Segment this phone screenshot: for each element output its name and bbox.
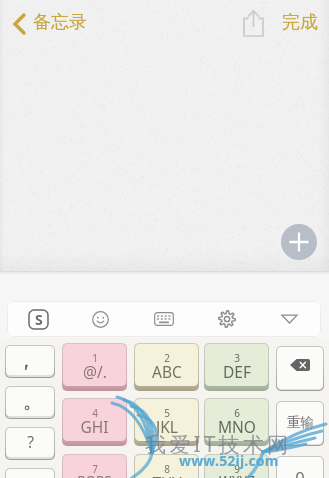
button[interactable]: 3 — [204, 343, 269, 391]
button[interactable]: 5 — [134, 398, 199, 446]
staticText: PQRS — [77, 472, 112, 478]
button[interactable]: Share — [236, 5, 270, 43]
button[interactable]: Delete — [276, 346, 324, 391]
staticText: 重输 — [287, 414, 314, 431]
staticText: @/. — [83, 361, 107, 382]
staticText: 完成 — [282, 11, 318, 34]
button[interactable]: 0 — [276, 456, 324, 478]
staticText: 6 — [234, 406, 240, 420]
button[interactable]: 完成 — [277, 6, 327, 43]
button[interactable]: Comma — [5, 345, 55, 378]
button[interactable]: Input method — [7, 301, 69, 337]
button[interactable]: Period — [5, 386, 55, 419]
staticText: 9 — [234, 462, 240, 476]
staticText: JKL — [156, 416, 178, 437]
staticText: S — [35, 310, 43, 329]
button[interactable]: 2 — [134, 343, 199, 391]
staticText: 备忘录 — [33, 11, 87, 34]
staticText: GHI — [80, 416, 109, 437]
staticText: TUV — [152, 472, 182, 478]
staticText: 4 — [92, 406, 98, 420]
button[interactable]: Add note — [281, 224, 317, 260]
button[interactable]: 9 — [204, 454, 269, 478]
button[interactable]: 6 — [204, 398, 269, 446]
button[interactable]: Settings — [195, 301, 258, 337]
button[interactable]: Symbols — [5, 468, 55, 478]
staticText: ? — [27, 431, 34, 452]
button[interactable]: 8 — [134, 454, 199, 478]
staticText: 8 — [164, 462, 170, 476]
staticText: www.52ij.com — [179, 451, 279, 470]
button[interactable]: 备忘录 — [6, 6, 98, 43]
staticText: 3 — [234, 351, 240, 365]
staticText: 2 — [164, 351, 170, 365]
button[interactable]: 1 — [62, 343, 127, 391]
staticText: ABC — [152, 361, 182, 382]
staticText: 7 — [92, 462, 98, 476]
button[interactable]: Question mark — [5, 427, 55, 460]
button[interactable]: 重输 — [276, 401, 324, 446]
staticText: 1 — [92, 351, 98, 365]
button[interactable]: 4 — [62, 398, 127, 446]
staticText: 0 — [295, 466, 305, 478]
button[interactable]: Hide keyboard — [258, 301, 321, 337]
button[interactable]: Emoji — [69, 301, 132, 337]
button[interactable]: 7 — [62, 454, 127, 478]
staticText: 5 — [164, 406, 170, 420]
staticText: WXYZ — [219, 472, 255, 478]
staticText: MNO — [218, 416, 256, 437]
button[interactable]: Keyboard — [132, 301, 195, 337]
staticText: 我爱IT技术网 — [145, 430, 292, 459]
staticText: DEF — [223, 361, 251, 382]
